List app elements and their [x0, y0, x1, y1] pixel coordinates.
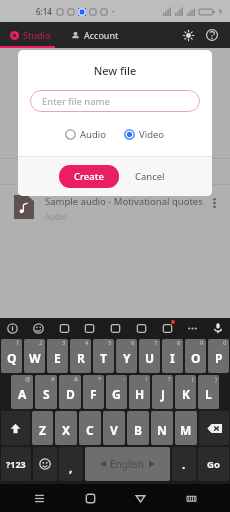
staticText: Z: [39, 422, 46, 438]
staticText: H: [135, 386, 145, 402]
staticText: &: [74, 375, 79, 383]
button[interactable]: Video: [122, 126, 167, 143]
staticText: C: [86, 422, 94, 438]
button[interactable]: [1, 411, 30, 445]
button[interactable]: Recent apps: [27, 486, 51, 510]
button[interactable]: Z: [32, 411, 53, 445]
staticText: N: [157, 422, 167, 438]
button[interactable]: Back: [128, 486, 152, 510]
staticText: 3: [62, 339, 66, 347]
button[interactable]: English: [85, 447, 170, 481]
staticText: J: [161, 386, 165, 402]
staticText: Q: [7, 350, 17, 366]
staticText: 4: [85, 339, 89, 347]
button[interactable]: 0: [208, 339, 229, 373]
staticText: 7: [154, 339, 158, 347]
staticText: V: [110, 422, 118, 438]
staticText: @: [25, 375, 31, 383]
button[interactable]: Go: [198, 447, 229, 481]
staticText: Video: [139, 128, 165, 141]
button[interactable]: M: [175, 411, 197, 445]
button[interactable]: 1: [1, 339, 22, 373]
staticText: .: [182, 456, 186, 472]
button[interactable]: Enter file name: [30, 90, 200, 112]
staticText: A: [18, 386, 27, 402]
staticText: Sample audio - Motivational quotes: [45, 195, 203, 208]
staticText: 6: [131, 339, 135, 347]
button[interactable]: ,: [59, 447, 83, 481]
staticText: F: [90, 386, 97, 402]
button[interactable]: C: [79, 411, 101, 445]
button[interactable]: 8: [162, 339, 183, 373]
staticText: Y: [123, 350, 131, 366]
button[interactable]: 6: [116, 339, 137, 373]
button[interactable]: Voice input: [210, 320, 226, 336]
button[interactable]: #: [35, 375, 57, 409]
staticText: 8: [177, 339, 181, 347]
button[interactable]: Toolbar item 4: [81, 320, 97, 336]
button[interactable]: *: [83, 375, 104, 409]
button[interactable]: [33, 447, 57, 481]
button[interactable]: Toolbar item 7: [159, 320, 175, 336]
button[interactable]: Audio: [63, 126, 108, 143]
button[interactable]: X: [55, 411, 77, 445]
button[interactable]: More options: [206, 195, 222, 211]
button[interactable]: Brightness: [178, 25, 198, 45]
button[interactable]: 4: [70, 339, 91, 373]
staticText: Audio: [80, 128, 106, 141]
button[interactable]: !: [129, 375, 150, 409]
button[interactable]: &: [59, 375, 81, 409]
button[interactable]: 3: [47, 339, 68, 373]
staticText: O: [191, 350, 201, 366]
staticText: 9: [200, 339, 204, 347]
staticText: B: [134, 422, 142, 438]
staticText: ): [215, 375, 217, 383]
button[interactable]: .: [172, 447, 196, 481]
button[interactable]: [199, 411, 229, 445]
staticText: ,: [69, 459, 73, 475]
button[interactable]: Toolbar item 6: [133, 320, 149, 336]
staticText: W: [29, 350, 41, 366]
button[interactable]: (: [175, 375, 196, 409]
staticText: E: [54, 350, 61, 366]
staticText: Go: [207, 458, 220, 471]
button[interactable]: 5: [93, 339, 114, 373]
button[interactable]: @: [11, 375, 33, 409]
staticText: T: [100, 350, 107, 366]
button[interactable]: Studio: [10, 29, 57, 41]
button[interactable]: Toolbar item 3: [56, 320, 72, 336]
button[interactable]: ?123: [1, 447, 31, 481]
staticText: ?: [168, 375, 171, 383]
button[interactable]: Hide keyboard: [179, 486, 203, 510]
staticText: M: [180, 422, 192, 438]
button[interactable]: N: [151, 411, 173, 445]
staticText: I: [170, 350, 175, 366]
button[interactable]: 9: [185, 339, 206, 373]
staticText: 0: [223, 339, 227, 347]
staticText: Video: [57, 166, 79, 177]
button[interactable]: Toolbar item 2: [30, 320, 46, 336]
staticText: #: [51, 375, 55, 383]
button[interactable]: Create: [59, 165, 119, 188]
staticText: !: [146, 375, 148, 383]
button[interactable]: Home: [78, 486, 102, 510]
button[interactable]: Account: [71, 29, 119, 41]
button[interactable]: ): [198, 375, 219, 409]
staticText: Account: [84, 29, 119, 41]
button[interactable]: Help: [202, 25, 222, 45]
button[interactable]: Sample audio - Motivational quotes: [0, 185, 230, 232]
staticText: -: [123, 375, 125, 383]
button[interactable]: Cancel: [129, 165, 171, 188]
staticText: Audio: [45, 211, 67, 222]
button[interactable]: -: [106, 375, 127, 409]
button[interactable]: Toolbar item 1: [4, 320, 20, 336]
button[interactable]: B: [127, 411, 149, 445]
staticText: D: [66, 386, 75, 402]
button[interactable]: More: [184, 320, 200, 336]
button[interactable]: 7: [139, 339, 160, 373]
staticText: 5: [108, 339, 112, 347]
button[interactable]: ?: [152, 375, 173, 409]
button[interactable]: 2: [24, 339, 45, 373]
button[interactable]: Toolbar item 5: [107, 320, 123, 336]
button[interactable]: V: [103, 411, 125, 445]
